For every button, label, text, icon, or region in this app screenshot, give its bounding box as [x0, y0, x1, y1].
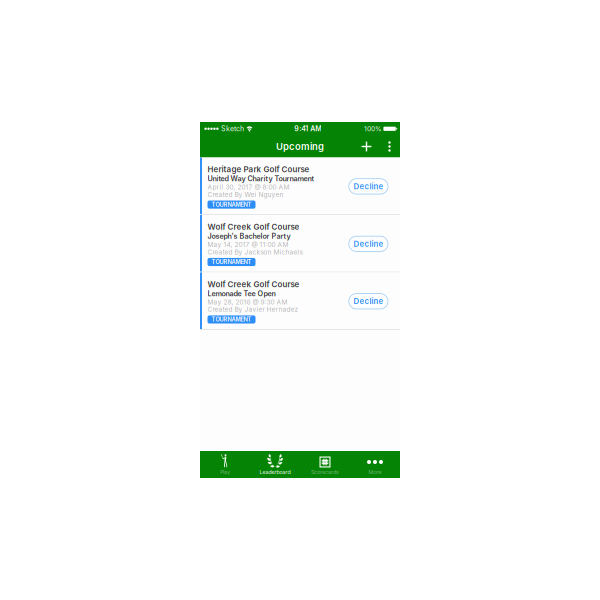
button[interactable]: Decline	[349, 236, 388, 251]
button[interactable]: Wolf Creek Golf Course	[200, 215, 400, 272]
staticText: United Way Charity Tournament	[207, 174, 314, 183]
staticText: Created By Wei Nguyen	[207, 191, 283, 198]
staticText: TOURNAMENT	[211, 316, 251, 323]
staticText: Play	[220, 469, 230, 475]
staticText: Decline	[353, 297, 383, 306]
staticText: Wolf Creek Golf Course	[207, 222, 299, 232]
button[interactable]: More options	[382, 136, 396, 157]
staticText: May 14, 2017 @ 11:00 AM	[207, 241, 288, 249]
staticText: Created By Javier Hernadez	[207, 305, 298, 313]
button[interactable]: Decline	[349, 179, 388, 194]
button[interactable]: Add event	[350, 136, 382, 157]
staticText: More	[368, 469, 381, 475]
staticText: Decline	[353, 239, 383, 248]
staticText: Created By Jackson Michaels	[207, 248, 302, 256]
button[interactable]: Play	[200, 451, 250, 478]
staticText: Upcoming	[276, 141, 324, 152]
staticText: Decline	[353, 182, 383, 191]
staticText: May 28, 2016 @ 9:30 AM	[207, 298, 287, 306]
staticText: Lemonade Tee Open	[207, 289, 275, 298]
staticText: April 30, 2017 @ 8:00 AM	[207, 183, 289, 191]
staticText: Joseph's Bachelor Party	[207, 232, 290, 240]
button[interactable]: More	[350, 451, 400, 478]
staticText: Sketch	[221, 124, 244, 133]
button[interactable]: Decline	[349, 294, 388, 309]
staticText: TOURNAMENT	[211, 201, 251, 208]
button[interactable]: Heritage Park Golf Course	[200, 157, 400, 214]
staticText: 100%	[364, 125, 382, 133]
staticText: Leaderboard	[259, 469, 290, 475]
staticText: Heritage Park Golf Course	[207, 164, 309, 174]
staticText: 9:41 AM	[294, 124, 322, 133]
button[interactable]: Wolf Creek Golf Course	[200, 272, 400, 329]
staticText: Wolf Creek Golf Course	[207, 279, 299, 289]
staticText: Scorecards	[311, 469, 339, 475]
staticText: TOURNAMENT	[211, 259, 251, 265]
button[interactable]: Leaderboard	[250, 451, 300, 478]
button[interactable]: Scorecards	[300, 451, 350, 478]
